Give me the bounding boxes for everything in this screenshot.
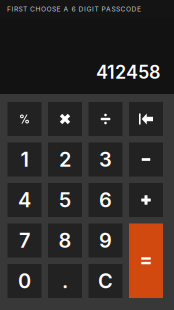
staticText: FIRST CHOOSE A 6 DIGIT PASSCODE	[7, 5, 141, 13]
staticText: 412458	[96, 61, 161, 83]
button[interactable]: 0	[7, 264, 41, 298]
staticText: 2	[59, 147, 71, 172]
staticText: .	[62, 269, 68, 293]
button[interactable]: Minus	[129, 142, 163, 176]
button[interactable]: 4	[7, 183, 41, 217]
button[interactable]: 7	[7, 223, 41, 257]
button[interactable]: 1	[7, 142, 41, 176]
button[interactable]: 8	[48, 223, 82, 257]
staticText: 3	[99, 147, 112, 172]
staticText: 9	[99, 228, 112, 253]
button[interactable]: .	[48, 264, 82, 298]
staticText: 8	[58, 228, 71, 253]
button[interactable]: Delete	[129, 102, 163, 136]
button[interactable]: Plus	[129, 183, 163, 217]
button[interactable]: 9	[88, 223, 122, 257]
button[interactable]: C	[88, 264, 122, 298]
button[interactable]: 3	[88, 142, 122, 176]
button[interactable]: Percent	[7, 102, 41, 136]
staticText: C	[98, 269, 113, 293]
staticText: 5	[59, 188, 71, 212]
staticText: 7	[19, 228, 30, 253]
staticText: 6	[99, 188, 112, 212]
staticText: 1	[20, 147, 28, 172]
staticText: 0	[18, 269, 31, 293]
button[interactable]: Multiply	[48, 102, 82, 136]
button[interactable]: 2	[48, 142, 82, 176]
button[interactable]: Equals	[129, 223, 163, 298]
button[interactable]: Divide	[88, 102, 122, 136]
button[interactable]: 6	[88, 183, 122, 217]
button[interactable]: 5	[48, 183, 82, 217]
staticText: 4	[18, 188, 31, 212]
